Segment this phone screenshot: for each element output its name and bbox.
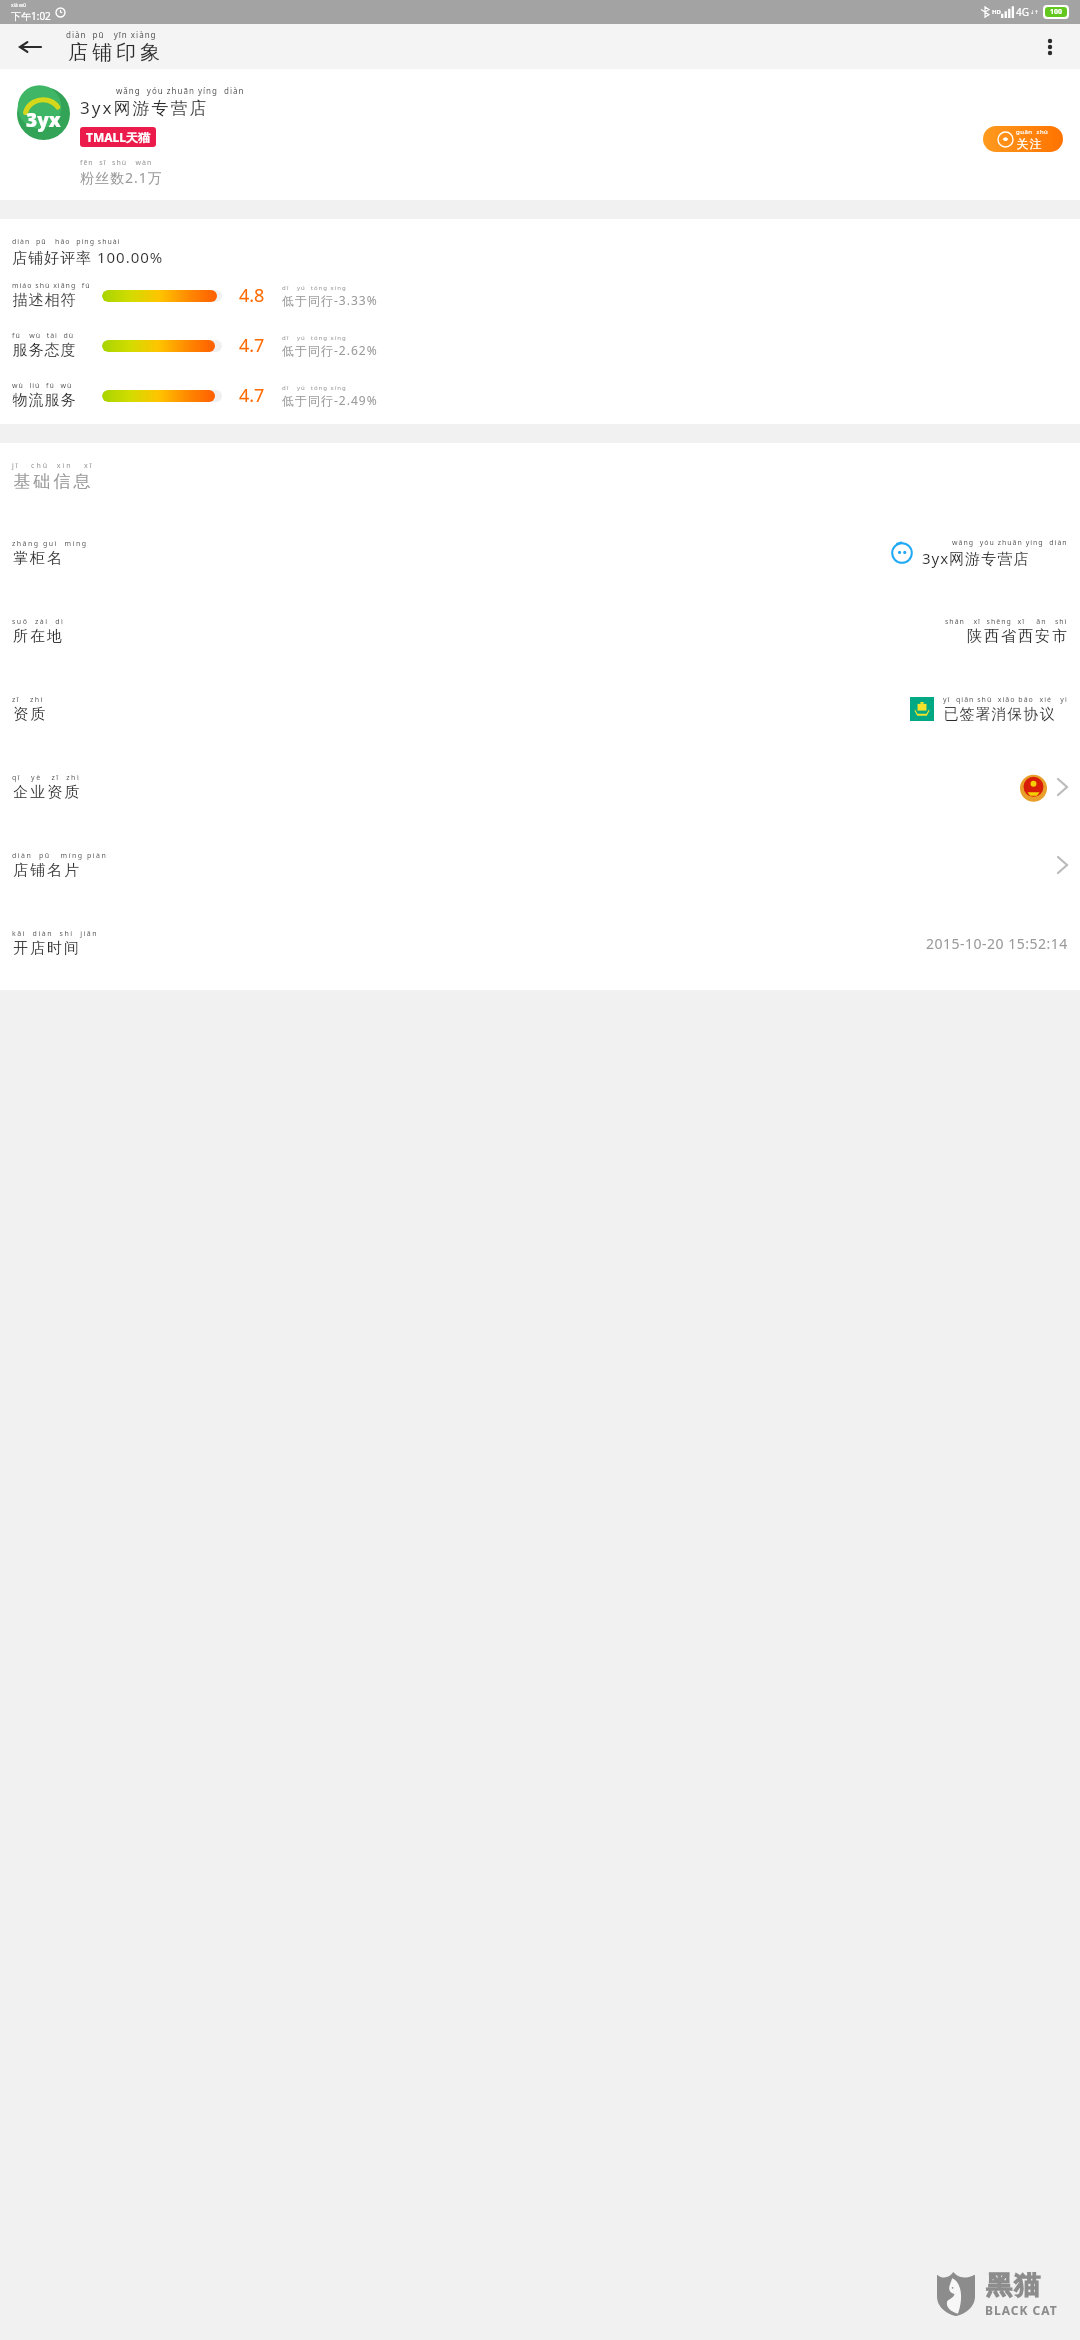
staticText: 物流服务 [12,391,76,410]
staticText: guān zhù [1016,128,1049,136]
staticText: xià wǔ [11,2,27,9]
staticText: 描述相符 [12,291,76,310]
staticText: yǐ qiān shǔ xiāo bǎo xié yì [943,695,1068,705]
staticText: 4.7 [239,333,265,358]
staticText: diàn pū yīn xiàng [66,29,157,40]
staticText: 100 [1050,7,1063,17]
staticText: 3yx网游专营店 [922,548,1030,568]
staticText: 企业资质 [12,783,80,802]
staticText: wǎng yóu zhuān yíng diàn [116,85,245,96]
staticText: wù liú fú wù [12,381,73,391]
button[interactable]: qǐ yè zī zhì [0,748,1080,826]
staticText: 低于同行-2.49% [282,392,378,408]
staticText: 店铺名片 [12,861,80,880]
staticText: 下午1:02 [11,9,51,23]
staticText: 店铺好评率 100.00% [12,247,164,267]
staticText: fēn sī shù wàn [80,158,153,168]
staticText: shǎn xī shěng xī ān shì [945,617,1068,627]
staticText: dī yú tóng xíng [282,334,347,342]
staticText: 掌柜名 [12,549,63,568]
staticText: 粉丝数2.1万 [80,168,163,187]
staticText: 4.8 [239,283,265,308]
staticText: 关注 [1016,136,1042,151]
button[interactable]: guān zhù [983,126,1063,152]
staticText: TMALL天猫 [86,129,150,145]
staticText: 已签署消保协议 [943,705,1055,724]
button[interactable]: kāi diàn shí jiān [0,904,1080,982]
staticText: 3yx [26,107,61,133]
staticText: 资质 [12,705,46,724]
staticText: dī yú tóng xíng [282,384,347,392]
staticText: 所在地 [12,627,63,646]
staticText: 服务态度 [12,341,76,360]
staticText: 低于同行-2.62% [282,342,378,358]
button[interactable]: Back [10,27,50,67]
staticText: 4G [1016,5,1029,19]
staticText: 开店时间 [12,939,80,958]
staticText: kāi diàn shí jiān [12,929,99,939]
staticText: 2015-10-20 15:52:14 [926,934,1068,953]
staticText: 低于同行-3.33% [282,292,378,308]
staticText: zhǎng guì míng [12,539,88,549]
staticText: diàn pū míng piàn [12,851,108,861]
staticText: miáo shù xiāng fú [12,281,91,291]
staticText: zī zhì [12,695,44,705]
staticText: fú wù tài dù [12,331,75,341]
staticText: suǒ zài dì [12,617,65,627]
button[interactable]: suǒ zài dì [0,592,1080,670]
staticText: 基础信息 [12,471,92,492]
staticText: 4.7 [239,383,265,408]
staticText: BLACK CAT [985,2302,1058,2318]
button[interactable]: zī zhì [0,670,1080,748]
staticText: 黑猫 [985,2269,1041,2302]
staticText: 店铺印象 [66,40,162,65]
button[interactable]: zhǎng guì míng [0,514,1080,592]
staticText: qǐ yè zī zhì [12,773,81,783]
staticText: 陕西省西安市 [966,627,1068,646]
button[interactable]: diàn pū míng piàn [0,826,1080,904]
staticText: 3yx网游专营店 [80,96,209,119]
staticText: HD [992,8,1001,16]
staticText: wǎng yóu zhuān yíng diàn [952,538,1068,548]
staticText: jī chǔ xìn xī [12,461,94,471]
button[interactable]: More options [1030,27,1070,67]
staticText: ↓↑ [1030,9,1039,15]
staticText: diàn pū hǎo píng shuài [12,237,121,247]
staticText: dī yú tóng xíng [282,284,347,292]
